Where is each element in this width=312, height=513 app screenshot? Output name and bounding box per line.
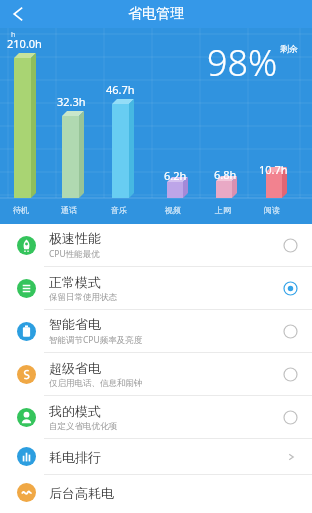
staticText: 98% bbox=[207, 38, 278, 87]
button[interactable]: 极速性能 bbox=[0, 224, 312, 267]
button[interactable]: 我的模式 bbox=[0, 396, 312, 439]
staticText: 超级省电 bbox=[49, 360, 101, 376]
button[interactable]: 超级省电 bbox=[0, 353, 312, 396]
staticText: 我的模式 bbox=[49, 403, 101, 419]
staticText: 自定义省电优化项 bbox=[49, 421, 117, 432]
button[interactable]: Back bbox=[0, 0, 28, 28]
staticText: 6.8h bbox=[214, 167, 237, 182]
staticText: 智能调节CPU频率及亮度 bbox=[49, 334, 143, 346]
button[interactable]: 智能省电 bbox=[0, 310, 312, 353]
staticText: 阅读 bbox=[264, 205, 280, 215]
staticText: 智能省电 bbox=[49, 316, 101, 332]
staticText: 待机 bbox=[13, 205, 29, 215]
staticText: 保留日常使用状态 bbox=[49, 292, 117, 303]
staticText: 省电管理 bbox=[128, 5, 184, 23]
staticText: CPU性能最优 bbox=[49, 248, 100, 260]
button[interactable]: 后台高耗电 bbox=[0, 475, 312, 510]
staticText: 正常模式 bbox=[49, 274, 101, 290]
staticText: 耗电排行 bbox=[49, 449, 286, 465]
staticText: 通话 bbox=[61, 205, 77, 215]
staticText: 32.3h bbox=[57, 94, 86, 109]
staticText: 6.2h bbox=[164, 168, 187, 183]
staticText: 音乐 bbox=[111, 205, 127, 215]
staticText: 46.7h bbox=[106, 82, 135, 97]
button[interactable]: 正常模式 bbox=[0, 267, 312, 310]
staticText: 后台高耗电 bbox=[49, 485, 296, 501]
staticText: 210.0h bbox=[7, 36, 42, 51]
staticText: 极速性能 bbox=[49, 230, 101, 246]
staticText: h bbox=[11, 30, 16, 40]
staticText: 10.7h bbox=[259, 162, 288, 177]
staticText: 上网 bbox=[215, 205, 231, 215]
staticText: 视频 bbox=[165, 205, 181, 215]
staticText: 仅启用电话、信息和闹钟 bbox=[49, 378, 143, 389]
staticText: 剩余 bbox=[280, 43, 298, 54]
button[interactable]: 耗电排行 bbox=[0, 439, 312, 475]
